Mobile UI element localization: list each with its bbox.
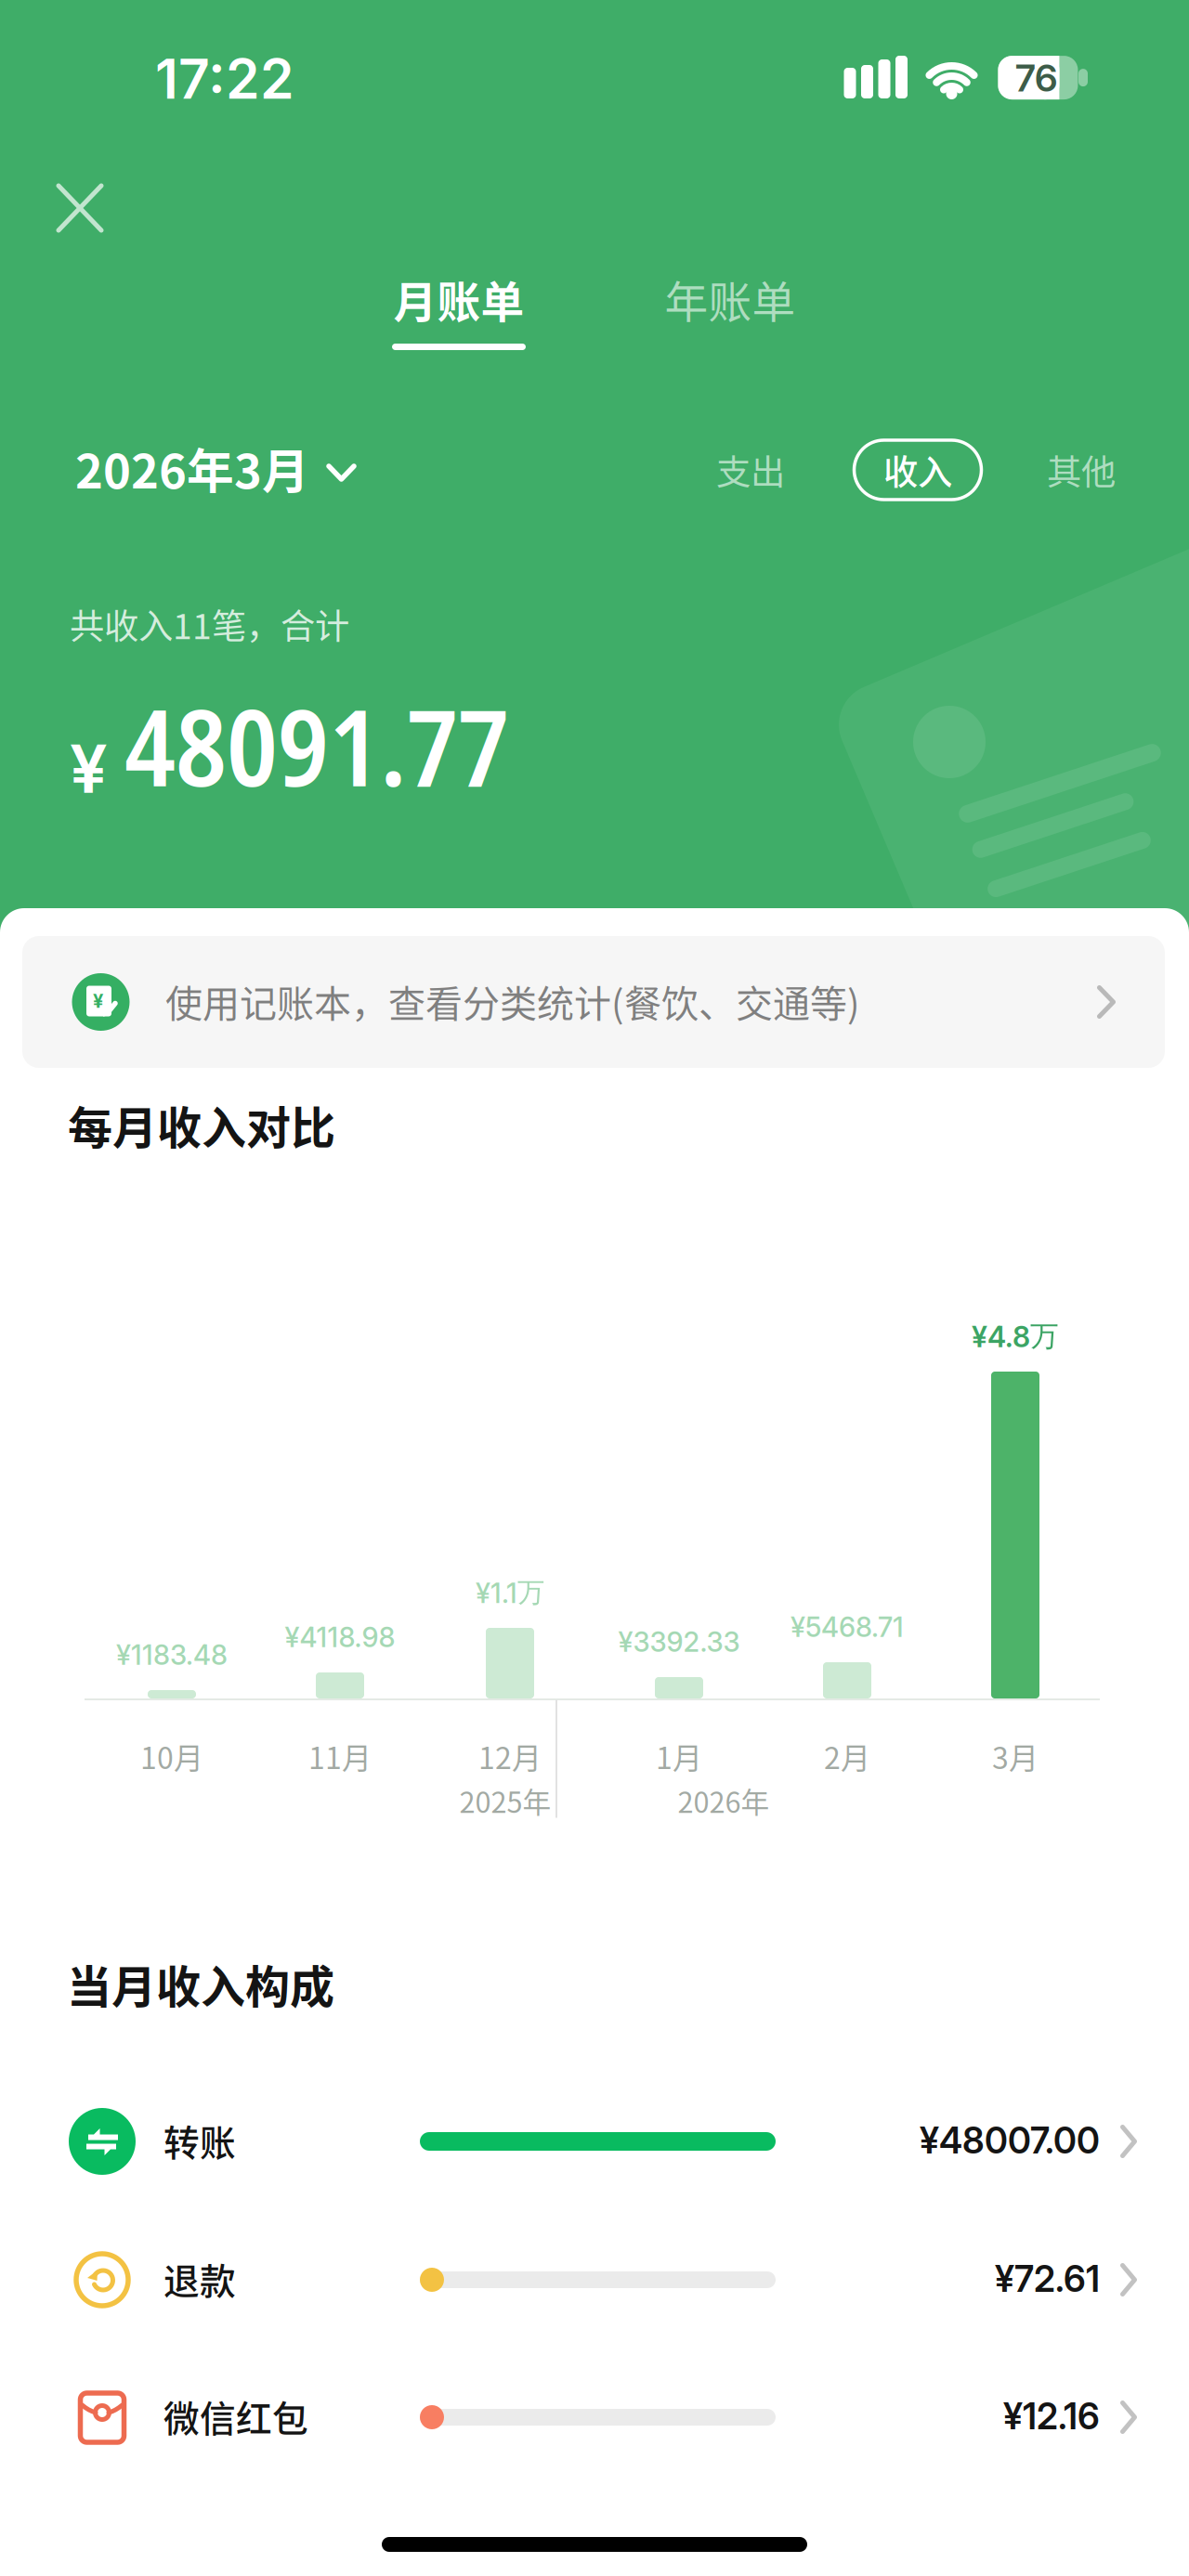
- staticText: 2026年: [678, 1780, 770, 1821]
- staticText: ¥12.16: [1003, 2395, 1100, 2438]
- staticText: ¥3392.33: [618, 1625, 740, 1658]
- staticText: 11月: [308, 1734, 372, 1777]
- staticText: ¥1.1万: [476, 1575, 544, 1610]
- button[interactable]: 月账单: [347, 257, 570, 341]
- staticText: 共收入11笔，合计: [70, 599, 349, 649]
- staticText: 使用记账本，查看分类统计(餐饮、交通等): [165, 974, 860, 1028]
- staticText: ¥: [70, 728, 108, 809]
- staticText: 月账单: [393, 268, 524, 330]
- staticText: ¥: [93, 990, 103, 1012]
- staticText: 每月收入对比: [68, 1092, 335, 1157]
- staticText: 76: [1015, 56, 1057, 100]
- staticText: 12月: [478, 1734, 542, 1777]
- button[interactable]: [34, 162, 125, 254]
- staticText: 年账单: [665, 268, 796, 330]
- button[interactable]: 退款: [0, 2212, 1189, 2348]
- staticText: 17:22: [155, 46, 294, 112]
- staticText: 1月: [656, 1734, 702, 1777]
- staticText: 10月: [140, 1734, 203, 1777]
- staticText: ¥1183.48: [116, 1638, 228, 1671]
- staticText: 当月收入构成: [67, 1951, 334, 2016]
- staticText: 其他: [1047, 445, 1116, 495]
- staticText: ¥4118.98: [285, 1621, 395, 1654]
- staticText: 2月: [824, 1734, 870, 1777]
- staticText: ¥48007.00: [920, 2119, 1100, 2162]
- button[interactable]: 转账: [0, 2074, 1189, 2209]
- staticText: 退款: [163, 2253, 236, 2305]
- staticText: 支出: [716, 445, 785, 495]
- button[interactable]: 其他: [1026, 433, 1137, 507]
- button[interactable]: 2026年3月: [75, 426, 651, 510]
- button[interactable]: 支出: [695, 433, 806, 507]
- staticText: ¥5468.71: [790, 1611, 904, 1643]
- staticText: ¥4.8万: [972, 1318, 1059, 1354]
- button[interactable]: 年账单: [619, 257, 842, 341]
- button[interactable]: 收入: [854, 440, 981, 500]
- button[interactable]: ¥: [22, 936, 1165, 1068]
- staticText: ¥72.61: [995, 2257, 1100, 2301]
- staticText: 2025年: [459, 1780, 551, 1821]
- staticText: 2026年3月: [75, 434, 309, 502]
- staticText: 收入: [883, 445, 952, 495]
- staticText: 微信红包: [163, 2390, 308, 2442]
- staticText: 48091.77: [124, 674, 509, 817]
- staticText: 3月: [992, 1734, 1039, 1777]
- button[interactable]: 微信红包: [0, 2349, 1189, 2485]
- staticText: 转账: [163, 2114, 236, 2166]
